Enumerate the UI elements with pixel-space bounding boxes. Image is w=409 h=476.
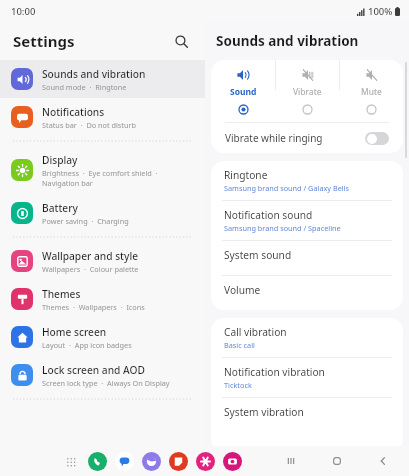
staticText: Lock screen and AOD [42,363,145,377]
button[interactable]: Home screen [0,318,205,356]
staticText: Mute [361,86,382,98]
staticText: Samsung brand sound / Galaxy Bells [224,183,350,193]
button[interactable]: Messages [115,452,134,471]
button[interactable]: Wallpaper and style [0,242,205,280]
staticText: System vibration [224,405,304,419]
staticText: Ticktock [224,380,252,390]
button[interactable]: Call vibration [211,318,403,357]
button[interactable]: Themes [0,280,205,318]
staticText: Home screen [42,325,107,339]
staticText: 10:00 [11,5,36,18]
staticText: Wallpaper and style [42,249,138,263]
button[interactable]: Notifications [0,98,205,136]
button[interactable]: Lock screen and AOD [0,356,205,394]
staticText: Battery [42,201,78,215]
button[interactable]: Vibrate [276,60,339,122]
staticText: Layout · App icon badges [42,340,132,350]
button[interactable]: Home [327,451,347,471]
staticText: Settings [13,31,75,51]
button[interactable]: Internet [142,452,161,471]
staticText: Brightness · Eye comfort shield · Naviga… [42,168,158,188]
button[interactable]: Ringtone [211,161,403,200]
button[interactable]: Volume [211,276,403,310]
button[interactable]: System vibration [211,398,403,432]
button[interactable]: Search [167,27,195,55]
staticText: Power saving · Charging [42,216,129,226]
button[interactable]: Sound [211,60,275,122]
button[interactable]: Notification vibration [211,358,403,397]
staticText: Volume [224,283,261,297]
staticText: Sound [230,86,257,98]
staticText: Status bar · Do not disturb [42,120,137,130]
button[interactable]: Recents [281,451,301,471]
staticText: Vibrate while ringing [225,131,323,145]
staticText: Notification vibration [224,365,325,379]
staticText: Vibrate [293,86,322,98]
button[interactable]: Battery [0,194,205,232]
staticText: Wallpapers · Colour palette [42,264,139,274]
staticText: Notification sound [224,208,313,222]
button[interactable]: Apps [62,453,80,471]
staticText: Screen lock type · Always On Display [42,378,170,388]
button[interactable]: Vibrate while ringing [211,123,403,153]
button[interactable]: Sounds and vibration [0,60,205,98]
staticText: Sound mode · Ringtone [42,82,127,92]
button[interactable]: Phone [88,452,107,471]
staticText: Themes [42,287,81,301]
staticText: Themes · Wallpapers · Icons [42,302,145,312]
staticText: Ringtone [224,168,268,182]
button[interactable]: Vibrate while ringing toggle [365,132,389,145]
button[interactable]: Store [196,452,215,471]
staticText: Call vibration [224,325,287,339]
button[interactable]: Mute [340,60,403,122]
staticText: Basic call [224,340,255,350]
staticText: Sounds and vibration [216,32,359,50]
staticText: 100% [368,5,393,18]
staticText: System sound [224,248,292,262]
button[interactable]: Back [373,451,393,471]
button[interactable]: Notification sound [211,201,403,240]
staticText: Display [42,153,78,167]
button[interactable]: Display [0,146,205,194]
staticText: Sounds and vibration [42,67,146,81]
button[interactable]: Camera [223,452,242,471]
staticText: Samsung brand sound / Spaceline [224,223,341,233]
staticText: Notifications [42,105,105,119]
button[interactable]: System sound [211,241,403,275]
button[interactable]: Gallery [169,452,188,471]
